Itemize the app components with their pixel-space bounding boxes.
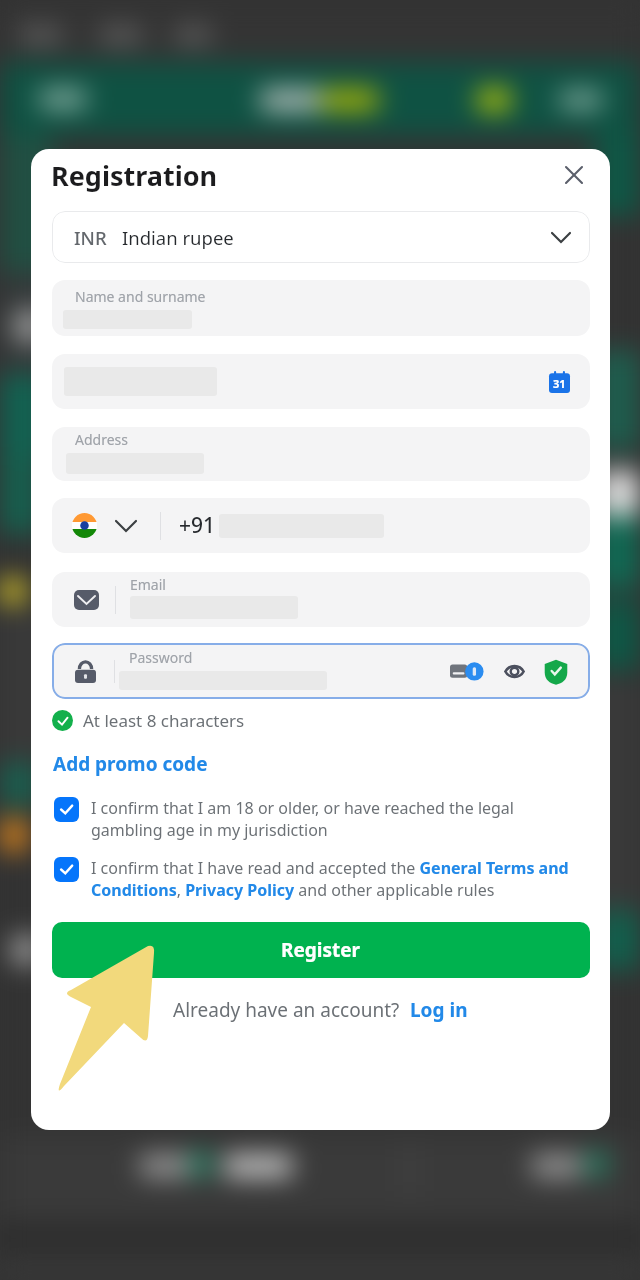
button[interactable]: Add promo code	[53, 749, 208, 779]
button[interactable]: Log in	[410, 997, 468, 1023]
staticText: Already have an account?	[173, 997, 400, 1023]
staticText: INR	[74, 225, 107, 250]
staticText: Register	[281, 937, 361, 963]
button[interactable]: Email	[52, 572, 590, 627]
staticText: Add promo code	[53, 751, 208, 777]
staticText: +91	[179, 511, 216, 540]
button[interactable]: Saved passwords	[450, 661, 486, 681]
staticText: Registration	[51, 157, 218, 194]
button[interactable]: I confirm that I have read and accepted …	[54, 857, 599, 901]
button[interactable]: I confirm that I am 18 or older, or have…	[54, 797, 554, 841]
button[interactable]: Name and surname	[52, 280, 590, 336]
staticText: 31	[553, 376, 566, 391]
button[interactable]: Pick date	[548, 370, 570, 393]
staticText: Password	[129, 648, 193, 667]
button[interactable]: Show password	[502, 659, 526, 683]
staticText: Email	[130, 575, 166, 594]
button[interactable]: Address	[52, 427, 590, 481]
staticText: Indian rupee	[122, 225, 234, 250]
button[interactable]: Close	[552, 153, 596, 197]
staticText: I confirm that I have read and accepted …	[91, 857, 573, 901]
button[interactable]: Pick date	[52, 354, 590, 409]
staticText: Name and surname	[75, 287, 206, 306]
button[interactable]: INR	[52, 211, 590, 263]
button[interactable]: Password	[52, 643, 590, 699]
staticText: Address	[75, 430, 128, 449]
staticText: I confirm that I am 18 or older, or have…	[91, 797, 527, 841]
staticText: At least 8 characters	[83, 709, 245, 732]
button[interactable]: +91	[52, 498, 590, 553]
button[interactable]: Register	[52, 922, 590, 978]
staticText: Log in	[410, 997, 468, 1023]
